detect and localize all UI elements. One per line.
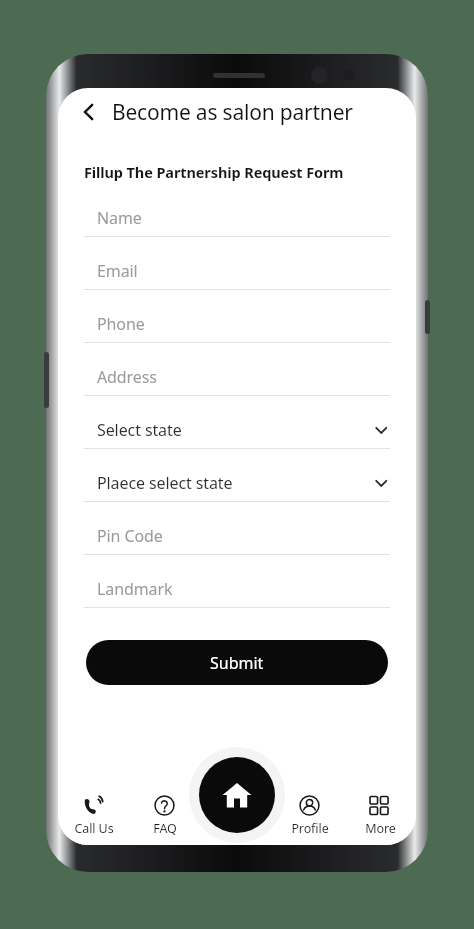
button[interactable]: Profile	[274, 787, 345, 845]
staticText: Select state	[97, 419, 374, 441]
staticText: Submit	[210, 652, 264, 674]
button[interactable]: Back	[72, 95, 106, 129]
staticText: Email	[97, 260, 390, 282]
staticText: Name	[97, 207, 390, 229]
staticText: Profile	[291, 820, 329, 837]
staticText: Plaece select state	[97, 472, 374, 494]
button[interactable]: Pin Code	[84, 518, 390, 571]
button[interactable]: More	[345, 787, 416, 845]
staticText: Phone	[97, 313, 390, 335]
button[interactable]: Home	[199, 757, 275, 833]
staticText: FAQ	[153, 820, 177, 837]
button[interactable]: Select state	[84, 412, 390, 465]
button[interactable]: FAQ	[129, 787, 200, 845]
button[interactable]: Name	[84, 200, 390, 253]
staticText: Address	[97, 366, 390, 388]
button[interactable]: Plaece select state	[84, 465, 390, 518]
staticText: Become as salon partner	[112, 98, 353, 127]
staticText: Landmark	[97, 578, 390, 600]
button[interactable]: Email	[84, 253, 390, 306]
staticText: Call Us	[74, 820, 114, 837]
button[interactable]: Phone	[84, 306, 390, 359]
button[interactable]: Submit	[86, 640, 388, 685]
button[interactable]: Landmark	[84, 571, 390, 624]
staticText: Pin Code	[97, 525, 390, 547]
staticText: More	[365, 820, 396, 837]
staticText: Fillup The Partnership Request Form	[84, 162, 344, 182]
button[interactable]: Address	[84, 359, 390, 412]
button[interactable]: Call Us	[58, 787, 129, 845]
